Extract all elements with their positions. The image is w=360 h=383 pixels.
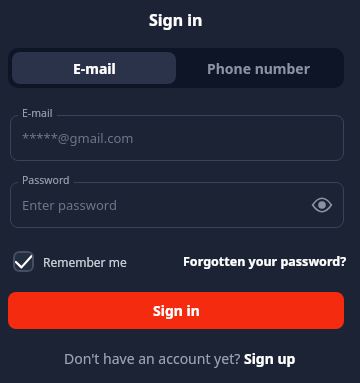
staticText: Sign in <box>149 9 203 31</box>
button[interactable]: Forgotten your password? <box>183 253 347 270</box>
button[interactable]: Enter password <box>10 182 344 228</box>
staticText: Phone number <box>207 59 310 78</box>
button[interactable]: *****@gmail.com <box>10 115 344 161</box>
staticText: Sign in <box>153 301 200 320</box>
button[interactable]: E-mail <box>12 52 176 84</box>
staticText: Don't have an account yet? Sign up <box>64 349 296 368</box>
staticText: Enter password <box>22 196 117 214</box>
staticText: E-mail <box>73 59 116 78</box>
button[interactable] <box>13 251 34 272</box>
staticText: Remember me <box>43 254 127 270</box>
button[interactable]: Sign in <box>8 292 344 329</box>
button[interactable]: Don't have an account yet? Sign up <box>0 349 360 368</box>
staticText: E-mail <box>22 106 53 120</box>
staticText: *****@gmail.com <box>22 129 134 147</box>
staticText: Password <box>22 173 70 187</box>
button[interactable]: Phone number <box>176 52 340 84</box>
